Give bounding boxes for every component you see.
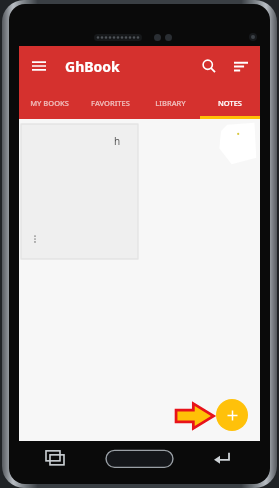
button[interactable]: FAVORITES bbox=[80, 86, 140, 119]
staticText: GhBook bbox=[65, 57, 120, 76]
staticText: h bbox=[114, 134, 121, 148]
button[interactable]: Add note bbox=[216, 399, 248, 431]
button[interactable]: Sort bbox=[226, 51, 256, 81]
button[interactable]: Search bbox=[194, 51, 224, 81]
button[interactable]: Open navigation drawer bbox=[25, 52, 53, 80]
staticText: LIBRARY bbox=[155, 98, 186, 108]
button[interactable]: More options bbox=[29, 233, 41, 245]
button[interactable]: h bbox=[21, 124, 138, 259]
button[interactable]: MY BOOKS bbox=[19, 86, 80, 119]
button[interactable]: NOTES bbox=[200, 86, 260, 119]
staticText: FAVORITES bbox=[91, 98, 130, 108]
staticText: NOTES bbox=[218, 98, 242, 108]
staticText: MY BOOKS bbox=[30, 98, 69, 108]
button[interactable]: LIBRARY bbox=[140, 86, 200, 119]
